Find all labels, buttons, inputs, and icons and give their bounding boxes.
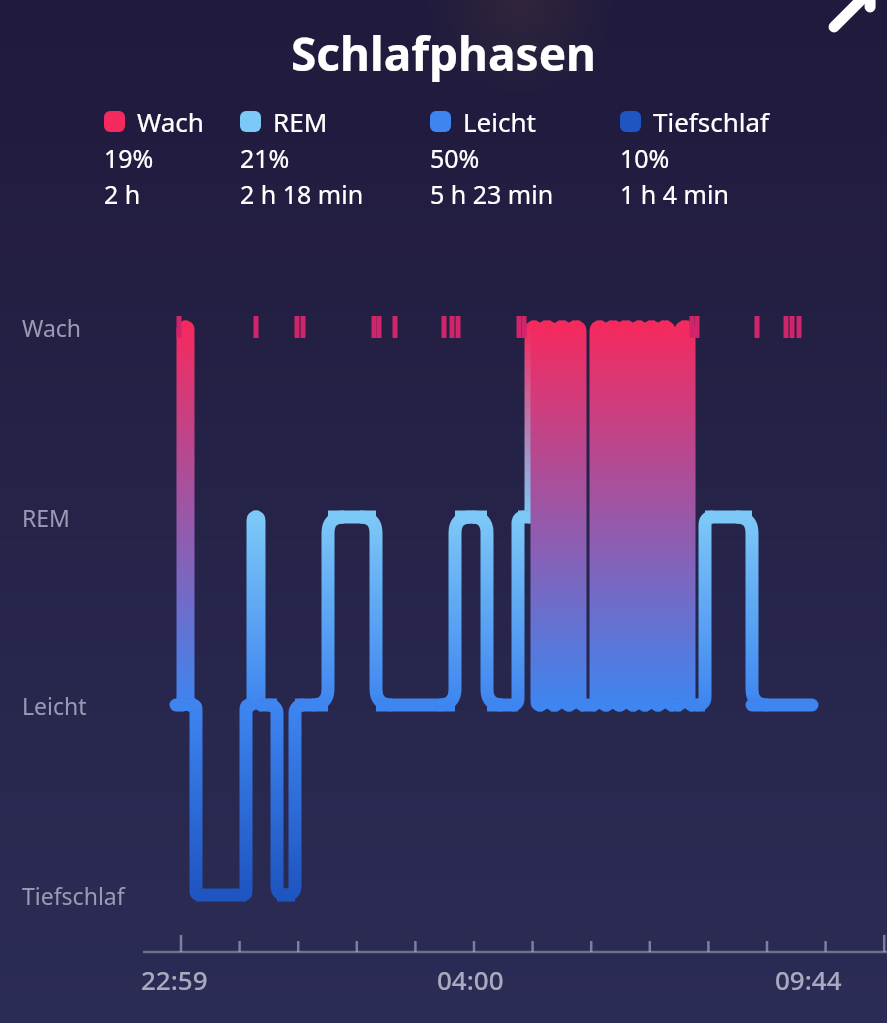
- staticText: 04:00: [437, 962, 504, 997]
- staticText: 50%: [430, 141, 480, 175]
- staticText: Tiefschlaf: [653, 104, 770, 139]
- button[interactable]: REM: [240, 104, 430, 211]
- staticText: 2 h 18 min: [240, 177, 364, 211]
- button[interactable]: Vollbild: [821, 0, 887, 40]
- staticText: 09:44: [775, 962, 842, 997]
- staticText: 21%: [240, 141, 290, 175]
- staticText: 19%: [104, 141, 154, 175]
- staticText: 22:59: [141, 962, 208, 997]
- staticText: Leicht: [463, 104, 536, 139]
- button[interactable]: Tiefschlaf: [620, 104, 800, 211]
- staticText: Wach: [137, 104, 204, 139]
- button[interactable]: Wach: [104, 104, 240, 211]
- staticText: 10%: [620, 141, 670, 175]
- staticText: 1 h 4 min: [620, 177, 729, 211]
- staticText: 5 h 23 min: [430, 177, 554, 211]
- staticText: 2 h: [104, 177, 141, 211]
- staticText: Tiefschlaf: [22, 880, 125, 911]
- staticText: Wach: [22, 312, 82, 343]
- button[interactable]: Leicht: [430, 104, 620, 211]
- staticText: REM: [22, 502, 70, 533]
- staticText: Leicht: [22, 690, 87, 721]
- staticText: Schlafphasen: [0, 22, 887, 85]
- staticText: REM: [273, 104, 328, 139]
